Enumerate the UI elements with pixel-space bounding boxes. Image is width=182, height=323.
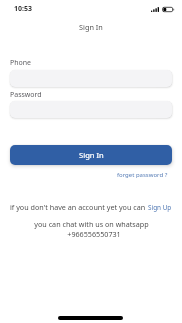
button[interactable]: forget password ? xyxy=(117,171,168,179)
button[interactable]: Sign In xyxy=(10,145,172,165)
staticText: if you don't have an account yet you can xyxy=(10,202,148,212)
staticText: Sign In xyxy=(79,150,104,160)
staticText: you can chat with us on whatsapp xyxy=(34,219,149,229)
staticText: Phone xyxy=(10,58,32,68)
staticText: Sign In xyxy=(79,22,103,32)
button[interactable]: Sign Up xyxy=(148,203,172,212)
staticText: 10:53 xyxy=(14,4,32,14)
other: Battery xyxy=(162,7,174,12)
other: Cellular signal xyxy=(151,7,159,12)
button[interactable]: +966556550731 xyxy=(67,229,121,239)
staticText: Password xyxy=(10,90,42,100)
